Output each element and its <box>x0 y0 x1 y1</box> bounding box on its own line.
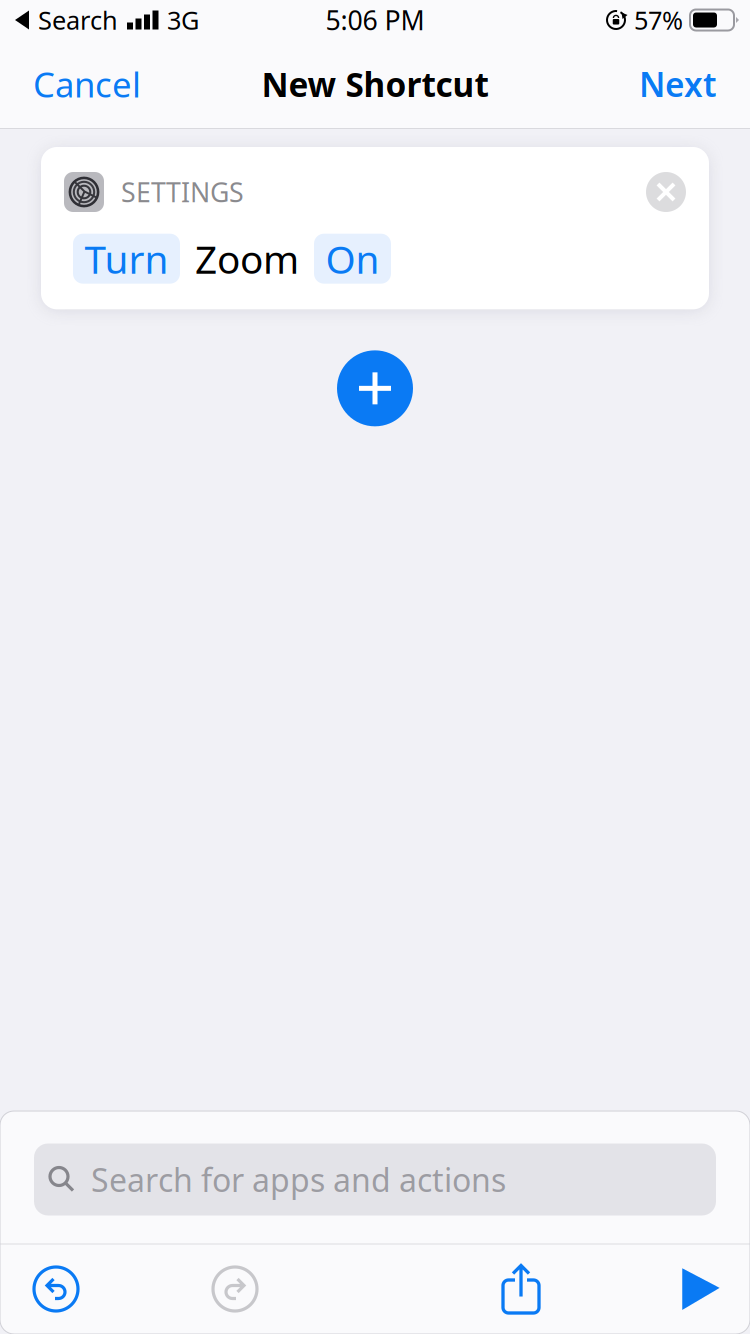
staticText: New Shortcut <box>261 62 488 106</box>
button[interactable]: Remove action <box>635 172 697 212</box>
staticText: Next <box>639 62 717 106</box>
button[interactable]: Add action <box>327 340 423 436</box>
button[interactable]: Cancel <box>15 45 159 123</box>
button[interactable]: Search for apps and actions <box>34 1143 716 1215</box>
staticText: 57% <box>634 3 683 37</box>
button[interactable]: Next <box>621 46 735 122</box>
button[interactable]: Redo <box>199 1250 271 1328</box>
staticText: Search for apps and actions <box>91 1158 506 1201</box>
staticText: On <box>325 233 379 284</box>
staticText: Turn <box>84 233 168 284</box>
staticText: 5:06 PM <box>325 2 424 38</box>
staticText: Zoom <box>195 233 299 284</box>
staticText: SETTINGS <box>121 174 244 210</box>
staticText: Search <box>38 3 118 37</box>
staticText: Cancel <box>33 61 141 107</box>
button[interactable]: Run <box>664 1250 736 1328</box>
button[interactable]: Undo <box>20 1250 92 1328</box>
staticText: 3G <box>167 3 199 37</box>
button[interactable]: Share <box>485 1250 557 1328</box>
